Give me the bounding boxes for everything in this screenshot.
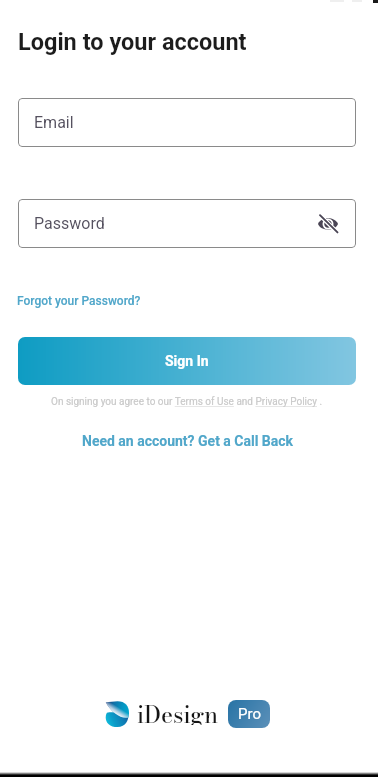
button[interactable]: Show password [314,210,342,238]
staticText: Pro [238,705,261,723]
button[interactable]: Email [18,98,356,147]
button[interactable]: Password [18,199,356,248]
button[interactable]: Forgot your Password? [17,294,141,308]
staticText: Password [34,214,105,233]
staticText: iDesign [137,697,219,725]
staticText: On signing you agree to our Terms of Use… [51,396,323,408]
staticText: Email [34,113,74,132]
button[interactable]: Pro [228,700,270,728]
button[interactable]: Need an account? Get a Call Back [82,433,294,449]
button[interactable]: Sign In [18,337,356,385]
staticText: Login to your account [18,28,247,56]
staticText: Sign In [165,353,209,369]
